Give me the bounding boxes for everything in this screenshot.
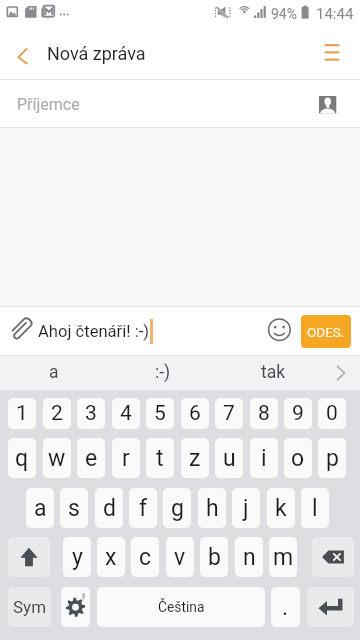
staticText: t	[156, 445, 164, 472]
button[interactable]: 5	[146, 398, 174, 429]
staticText: s	[68, 495, 80, 522]
button[interactable]: ODES.	[301, 315, 351, 348]
button[interactable]: x	[97, 537, 125, 577]
button[interactable]: a	[26, 488, 54, 528]
staticText: 94%	[271, 6, 297, 22]
staticText: g	[171, 495, 184, 522]
staticText: 4	[120, 401, 132, 426]
staticText: 8	[258, 401, 270, 426]
staticText: f	[139, 495, 147, 522]
staticText: 3	[85, 401, 97, 426]
button[interactable]: Backspace	[312, 537, 354, 577]
button[interactable]: a	[14, 355, 94, 390]
button[interactable]: w	[43, 438, 71, 478]
staticText: j	[243, 495, 249, 522]
button[interactable]: 7	[215, 398, 243, 429]
staticText: d	[103, 495, 116, 522]
button[interactable]: k	[267, 488, 295, 528]
staticText: v	[174, 544, 186, 571]
button[interactable]: h	[198, 488, 226, 528]
staticText: l	[312, 495, 318, 522]
button[interactable]: e	[77, 438, 105, 478]
button[interactable]: Emoji	[266, 317, 293, 344]
button[interactable]: tak	[233, 355, 313, 390]
staticText: a	[49, 362, 59, 383]
button[interactable]: 4	[112, 398, 140, 429]
button[interactable]: More suggestions	[330, 362, 352, 384]
button[interactable]: Čeština	[97, 587, 265, 627]
button[interactable]: g	[163, 488, 191, 528]
staticText: 1	[16, 401, 28, 426]
button[interactable]: 8	[250, 398, 278, 429]
staticText: 6	[189, 401, 201, 426]
button[interactable]: f	[129, 488, 157, 528]
button[interactable]: Keyboard settings	[61, 587, 90, 627]
button[interactable]: p	[318, 438, 346, 478]
staticText: 2	[51, 401, 63, 426]
button[interactable]: b	[200, 537, 228, 577]
staticText: w	[48, 445, 66, 472]
button[interactable]: Menu	[314, 30, 360, 76]
staticText: y	[72, 544, 83, 571]
button[interactable]: 9	[284, 398, 312, 429]
staticText: k	[275, 495, 287, 522]
button[interactable]: o	[284, 438, 312, 478]
staticText: 9	[292, 401, 304, 426]
button[interactable]: Back	[0, 30, 46, 76]
staticText: r	[122, 445, 130, 472]
staticText: 14:44	[316, 5, 354, 23]
button[interactable]: 2	[43, 398, 71, 429]
button[interactable]: 0	[318, 398, 346, 429]
button[interactable]: y	[63, 537, 91, 577]
button[interactable]: t	[146, 438, 174, 478]
staticText: x	[105, 544, 117, 571]
button[interactable]: l	[301, 488, 329, 528]
staticText: 7	[223, 401, 235, 426]
staticText: Čeština	[158, 599, 205, 615]
button[interactable]: d	[95, 488, 123, 528]
staticText: a	[34, 495, 47, 522]
staticText: 5	[154, 401, 166, 426]
staticText: .	[282, 594, 289, 621]
button[interactable]: z	[181, 438, 209, 478]
button[interactable]: Add contact	[317, 93, 339, 115]
staticText: q	[15, 445, 29, 472]
button[interactable]: r	[112, 438, 140, 478]
staticText: u	[223, 445, 236, 472]
button[interactable]: Attach file	[6, 314, 40, 348]
staticText: Nová zpráva	[47, 43, 146, 64]
staticText: Příjemce	[17, 95, 80, 114]
button[interactable]: m	[269, 537, 297, 577]
button[interactable]: :-)	[123, 355, 203, 390]
button[interactable]: Sym	[8, 587, 51, 627]
button[interactable]: .	[271, 587, 300, 627]
staticText: c	[139, 544, 152, 571]
staticText: Ahoj čtenáři! :-)	[38, 322, 150, 341]
button[interactable]: 6	[181, 398, 209, 429]
staticText: h	[206, 495, 219, 522]
button[interactable]: i	[250, 438, 278, 478]
staticText: p	[326, 445, 339, 472]
button[interactable]: Shift	[8, 537, 50, 577]
staticText: Sym	[13, 597, 47, 617]
staticText: :-)	[155, 362, 171, 383]
staticText: m	[273, 544, 294, 571]
button[interactable]: s	[60, 488, 88, 528]
button[interactable]: n	[235, 537, 263, 577]
button[interactable]: q	[8, 438, 36, 478]
staticText: tak	[261, 362, 286, 383]
button[interactable]: u	[215, 438, 243, 478]
staticText: e	[85, 445, 98, 472]
staticText: i	[261, 445, 267, 472]
button[interactable]: j	[232, 488, 260, 528]
button[interactable]: Enter	[307, 587, 354, 627]
button[interactable]: 3	[77, 398, 105, 429]
staticText: b	[208, 544, 221, 571]
staticText: n	[243, 544, 256, 571]
staticText: z	[189, 445, 201, 472]
button[interactable]: 1	[8, 398, 36, 429]
staticText: o	[291, 445, 305, 472]
button[interactable]: c	[131, 537, 159, 577]
staticText: ODES.	[307, 324, 345, 340]
button[interactable]: v	[166, 537, 194, 577]
